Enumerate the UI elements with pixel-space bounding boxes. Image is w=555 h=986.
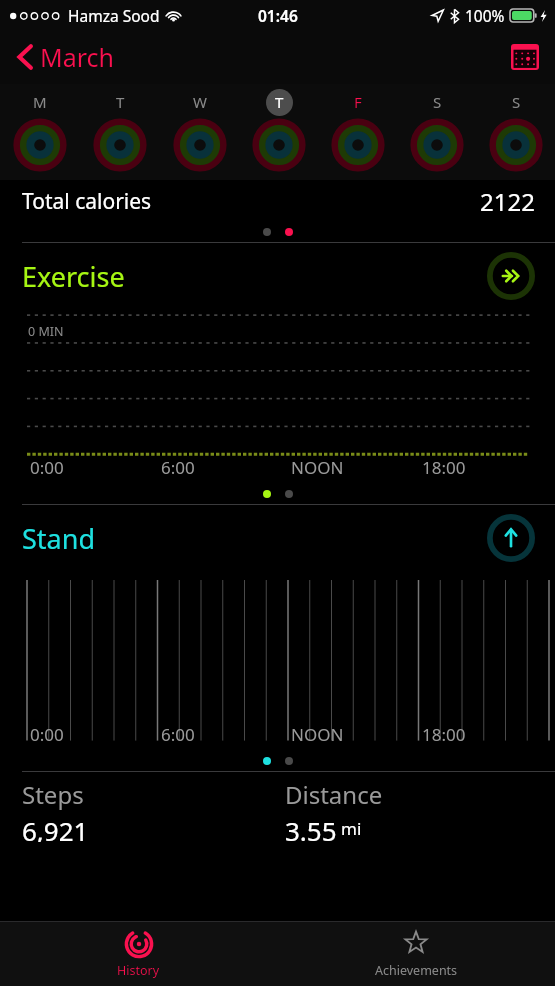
staticText: W: [193, 92, 207, 112]
button[interactable]: March: [14, 36, 118, 78]
staticText: Exercise: [22, 258, 125, 295]
button[interactable]: Total calories: [0, 180, 555, 222]
staticText: Achievements: [375, 962, 458, 979]
button[interactable]: Calendar: [509, 42, 541, 72]
button[interactable]: T: [80, 84, 160, 180]
button[interactable]: F: [318, 84, 397, 180]
staticText: M: [33, 92, 47, 112]
staticText: Total calories: [22, 187, 152, 216]
staticText: History: [117, 962, 160, 979]
button[interactable]: Steps: [0, 772, 277, 842]
staticText: Distance: [285, 778, 383, 811]
staticText: 6:00: [161, 723, 195, 746]
button[interactable]: Exercise details: [487, 252, 535, 300]
staticText: 0:00: [30, 456, 64, 479]
staticText: 0 MIN: [28, 323, 64, 340]
staticText: S: [433, 92, 442, 112]
staticText: T: [116, 92, 125, 112]
staticText: Hamza Sood: [68, 5, 160, 26]
staticText: NOON: [291, 723, 344, 746]
button[interactable]: Distance: [277, 772, 555, 842]
staticText: 18:00: [422, 723, 466, 746]
staticText: NOON: [291, 456, 344, 479]
staticText: T: [275, 92, 284, 112]
staticText: 01:46: [258, 5, 298, 26]
staticText: 0:00: [30, 723, 64, 746]
staticText: 6:00: [161, 456, 195, 479]
staticText: 2122: [480, 185, 535, 218]
button[interactable]: W: [160, 84, 239, 180]
button[interactable]: Stand details: [487, 514, 535, 562]
staticText: 6,921: [22, 813, 89, 842]
staticText: F: [354, 92, 362, 112]
staticText: S: [512, 92, 521, 112]
staticText: 18:00: [422, 456, 466, 479]
staticText: mi: [341, 817, 362, 840]
button[interactable]: S: [397, 84, 476, 180]
button[interactable]: S: [476, 84, 555, 180]
staticText: Steps: [22, 778, 84, 811]
staticText: Stand: [22, 520, 96, 557]
button[interactable]: Achievements: [277, 922, 555, 986]
button[interactable]: M: [0, 84, 80, 180]
staticText: 3.55: [285, 813, 337, 842]
staticText: 100%: [465, 5, 505, 26]
staticText: March: [40, 40, 114, 74]
button[interactable]: History: [0, 922, 277, 986]
button[interactable]: T: [239, 84, 318, 180]
